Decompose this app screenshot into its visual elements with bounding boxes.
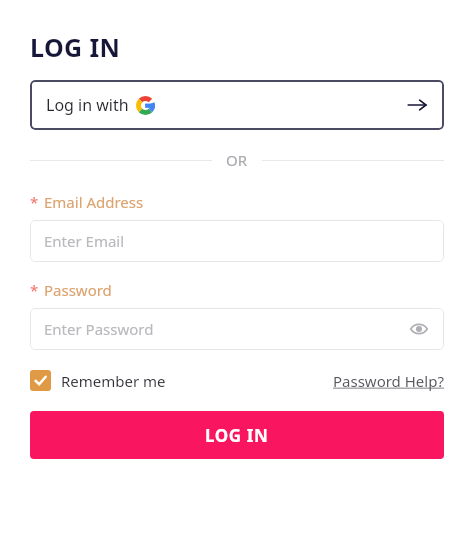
staticText: Enter Password	[44, 319, 154, 339]
staticText: OR	[226, 150, 248, 170]
staticText: LOG IN	[205, 424, 269, 447]
button[interactable]: Password Help?	[333, 371, 444, 391]
staticText: LOG IN	[30, 30, 121, 64]
button[interactable]: Enter Password	[30, 308, 444, 350]
staticText: Log in with	[46, 94, 129, 116]
staticText: Password	[44, 280, 112, 300]
button[interactable]: Log in with	[30, 80, 444, 130]
staticText: *	[30, 192, 39, 212]
staticText: Enter Email	[44, 231, 125, 251]
staticText: Remember me	[61, 371, 166, 391]
staticText: Email Address	[44, 192, 144, 212]
staticText: *	[30, 280, 39, 300]
button[interactable]: LOG IN	[30, 411, 444, 459]
button[interactable]: Enter Email	[30, 220, 444, 262]
button[interactable]: Show password	[408, 318, 430, 340]
button[interactable]: Remember me	[30, 370, 166, 391]
